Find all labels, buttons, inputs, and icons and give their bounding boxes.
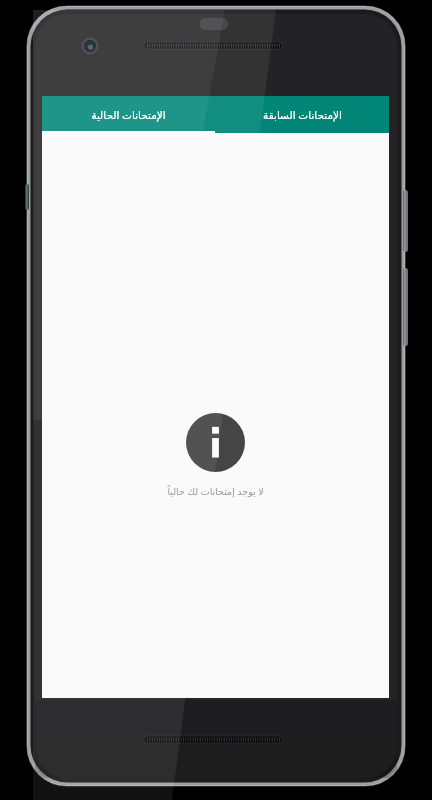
- other: Information: [186, 413, 245, 472]
- button[interactable]: الإمتحانات الحالية: [42, 96, 215, 133]
- button[interactable]: الإمتحانات السابقة: [215, 96, 389, 133]
- staticText: الإمتحانات الحالية: [91, 108, 166, 122]
- staticText: الإمتحانات السابقة: [263, 108, 342, 122]
- staticText: لا يوجد إمتحانات لك حالياً: [167, 485, 264, 498]
